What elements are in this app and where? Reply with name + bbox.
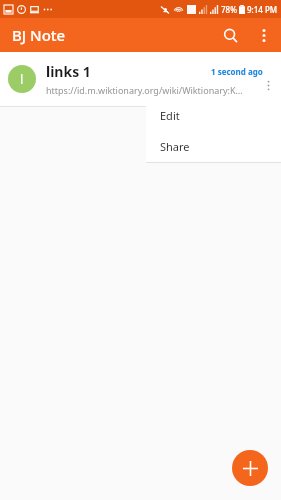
staticText: 1 second ago (211, 66, 263, 77)
staticText: Share (160, 139, 190, 154)
button[interactable]: Share (146, 131, 281, 162)
staticText: Edit (160, 108, 180, 123)
button[interactable]: Add note (232, 450, 268, 486)
button[interactable]: Item options (263, 52, 273, 106)
button[interactable]: Edit (146, 100, 281, 131)
staticText: 9:14 PM (247, 4, 278, 15)
button[interactable]: Search (213, 18, 247, 52)
button[interactable]: l (0, 52, 281, 106)
staticText: l (20, 70, 24, 88)
staticText: 78% (221, 4, 237, 15)
staticText: links 1 (46, 62, 211, 81)
button[interactable]: More options (247, 18, 281, 52)
staticText: BJ Note (12, 25, 66, 45)
staticText: https://id.m.wiktionary.org/wiki/Wiktion… (46, 84, 243, 96)
